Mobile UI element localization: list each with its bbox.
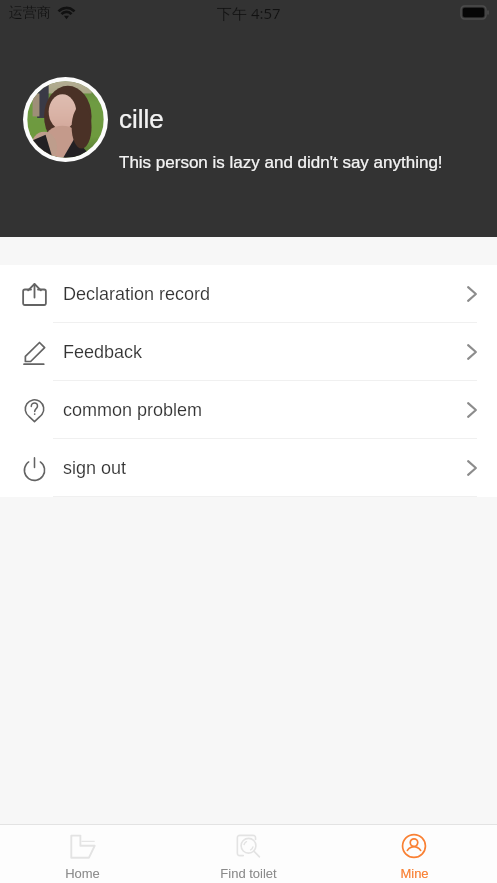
staticText: Declaration record [63, 284, 211, 304]
staticText: 运营商 [9, 4, 51, 22]
staticText: This person is lazy and didn't say anyth… [119, 153, 443, 172]
staticText: 下午 4:57 [217, 3, 281, 23]
button[interactable]: common problem [0, 381, 497, 439]
staticText: common problem [63, 400, 203, 420]
staticText: Feedback [63, 342, 143, 362]
staticText: cille [119, 104, 164, 133]
button[interactable]: sign out [0, 439, 497, 497]
button[interactable]: Declaration record [0, 265, 497, 323]
button[interactable]: Feedback [0, 323, 497, 381]
button[interactable]: Find toilet [165, 825, 331, 883]
button[interactable]: cille [119, 98, 449, 136]
button[interactable]: Mine [331, 825, 497, 883]
button[interactable]: Profile photo [23, 77, 108, 162]
staticText: Mine [400, 866, 429, 881]
staticText: sign out [63, 458, 127, 478]
staticText: Find toilet [220, 866, 277, 881]
button[interactable]: Home [0, 825, 165, 883]
staticText: Home [65, 866, 100, 881]
